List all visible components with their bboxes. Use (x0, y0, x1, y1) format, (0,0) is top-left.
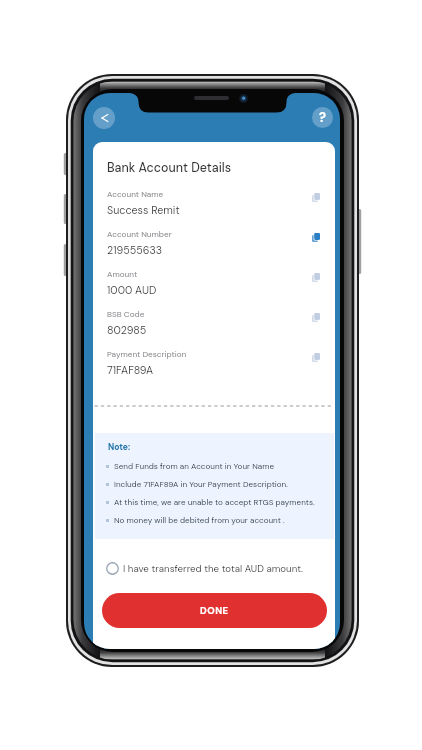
staticText: Payment Description (107, 349, 187, 360)
button[interactable]: BSB Code (93, 306, 335, 340)
button[interactable]: I have transferred the total AUD amount. (106, 559, 326, 577)
staticText: Send Funds from an Account in Your Name (114, 461, 274, 472)
button[interactable]: Back (93, 107, 115, 129)
staticText: Include 71FAF89A in Your Payment Descrip… (114, 479, 288, 490)
staticText: DONE (200, 605, 229, 617)
button[interactable]: Amount (93, 266, 335, 300)
staticText: Success Remit (107, 203, 180, 217)
staticText: 71FAF89A (107, 363, 154, 377)
staticText: Note: (108, 442, 131, 453)
staticText: Account Number (107, 229, 172, 240)
button[interactable]: Help (312, 107, 333, 128)
staticText: Amount (107, 269, 138, 280)
button[interactable]: Payment Description (93, 346, 335, 380)
button[interactable]: DONE (102, 593, 327, 628)
staticText: 802985 (107, 323, 147, 337)
staticText: 219555633 (107, 243, 163, 257)
staticText: BSB Code (107, 309, 145, 320)
button[interactable]: Account Name (93, 186, 335, 220)
button[interactable]: Account Number (93, 226, 335, 260)
staticText: ? (319, 109, 326, 126)
staticText: 1000 AUD (107, 283, 157, 297)
staticText: Account Name (107, 189, 164, 200)
staticText: At this time, we are unable to accept RT… (114, 497, 315, 508)
staticText: Bank Account Details (107, 160, 232, 176)
staticText: I have transferred the total AUD amount. (123, 562, 303, 575)
staticText: No money will be debited from your accou… (114, 515, 285, 526)
